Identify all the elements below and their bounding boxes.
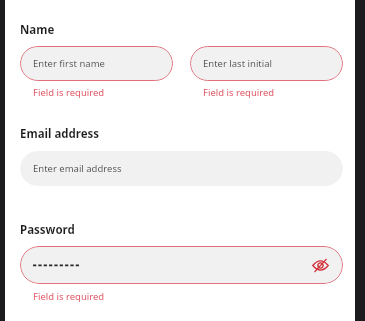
button[interactable]: Enter email address (20, 151, 343, 186)
staticText: Field is required (33, 86, 105, 99)
staticText: Enter email address (33, 162, 122, 175)
button[interactable]: Hide password (20, 246, 343, 284)
button[interactable]: Hide password (308, 253, 332, 277)
staticText: Enter last initial (203, 57, 272, 70)
staticText: Field is required (33, 290, 105, 303)
button[interactable]: Enter last initial (190, 46, 343, 81)
staticText: Email address (20, 126, 100, 142)
button[interactable]: Enter first name (20, 46, 173, 81)
staticText: Field is required (203, 86, 275, 99)
staticText: Password (20, 222, 75, 238)
staticText: Enter first name (33, 57, 105, 70)
staticText: Name (20, 22, 55, 38)
